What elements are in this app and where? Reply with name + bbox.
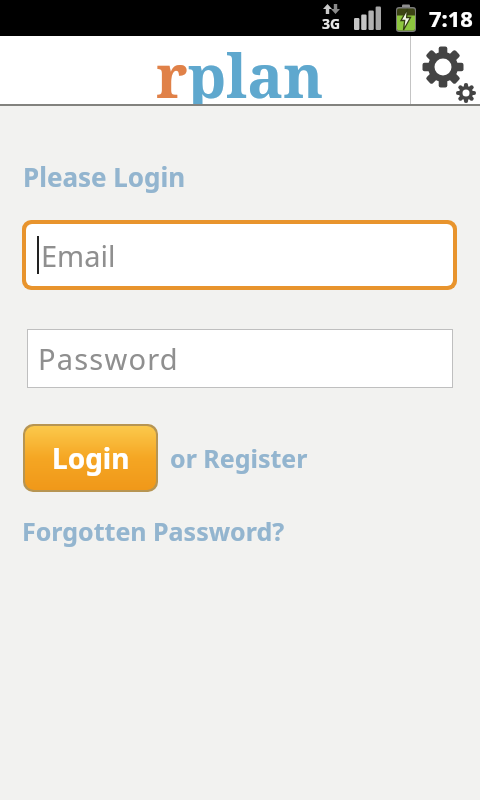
button[interactable] bbox=[411, 36, 480, 106]
button[interactable]: or Register bbox=[170, 441, 308, 475]
staticText: Password bbox=[38, 339, 179, 378]
staticText: Login bbox=[52, 439, 130, 477]
button[interactable]: Forgotten Password? bbox=[22, 514, 285, 548]
button[interactable]: Email bbox=[22, 220, 457, 290]
staticText: 7:18 bbox=[429, 3, 473, 33]
button[interactable]: Login bbox=[23, 424, 158, 492]
staticText: 3G bbox=[322, 14, 341, 33]
staticText: Please Login bbox=[23, 159, 186, 194]
staticText: rplan bbox=[156, 34, 324, 104]
button[interactable]: Password bbox=[27, 329, 453, 388]
staticText: Email bbox=[41, 236, 116, 275]
